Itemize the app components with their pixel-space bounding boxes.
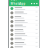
button[interactable] xyxy=(9,37,39,41)
button[interactable] xyxy=(9,11,39,15)
button[interactable] xyxy=(9,33,39,37)
button[interactable] xyxy=(9,41,39,46)
button[interactable] xyxy=(9,15,39,19)
button[interactable] xyxy=(9,19,39,24)
staticText: 9:41 xyxy=(10,0,17,1)
button[interactable] xyxy=(9,46,39,48)
button[interactable]: Search xyxy=(32,3,35,4)
button[interactable]: More options xyxy=(35,3,37,4)
button[interactable] xyxy=(9,6,39,11)
button[interactable] xyxy=(9,24,39,28)
button[interactable] xyxy=(9,28,39,32)
staticText: WhatsApp xyxy=(10,2,25,5)
